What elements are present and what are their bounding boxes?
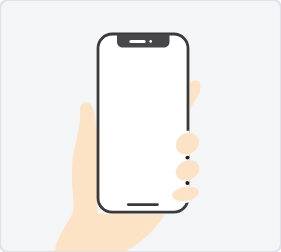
other: Illustration of a hand holding a smartph…: [0, 0, 281, 252]
